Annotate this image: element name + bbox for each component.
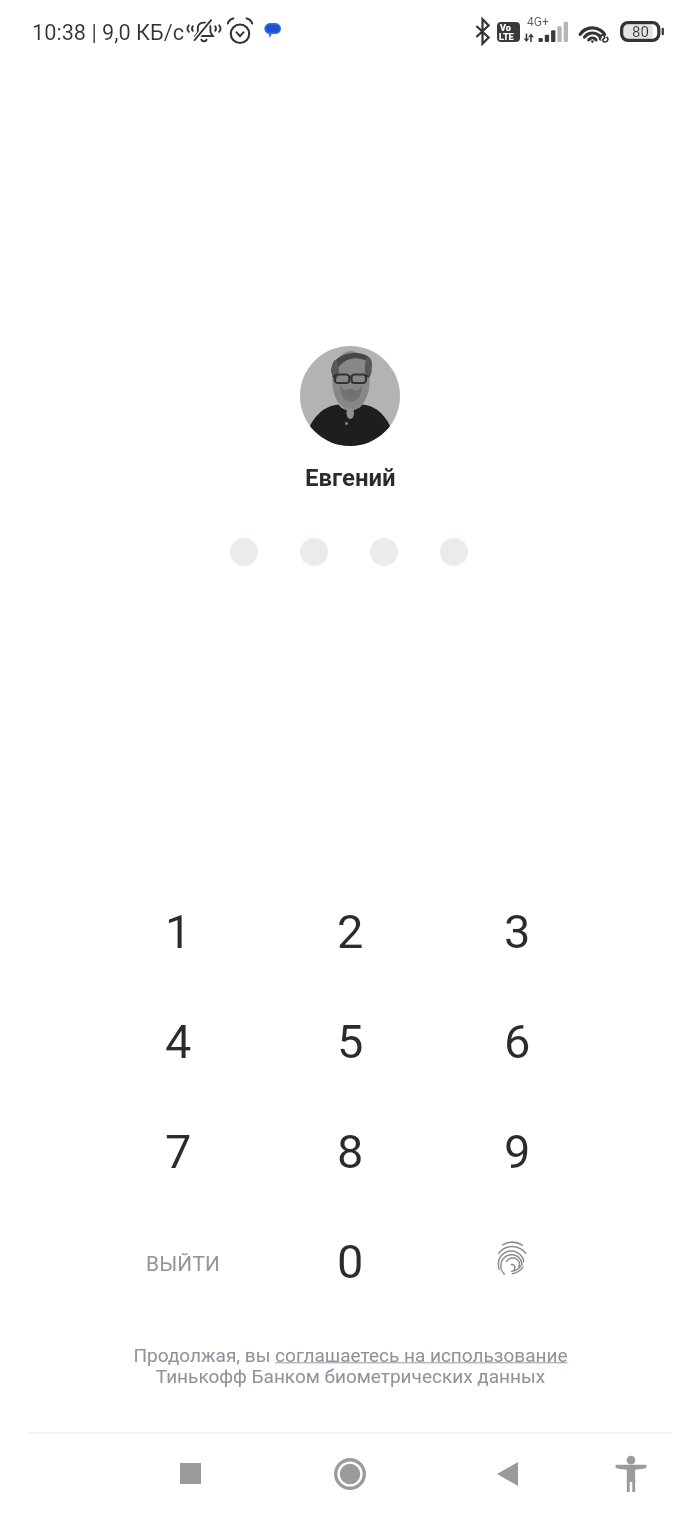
staticText: 1: [165, 904, 192, 959]
staticText: 2: [337, 904, 364, 959]
button[interactable]: Home: [305, 1430, 395, 1517]
staticText: Продолжая, вы соглашаетесь на использова…: [133, 1344, 568, 1388]
button[interactable]: 8: [295, 1105, 405, 1197]
staticText: 3: [504, 904, 531, 959]
button[interactable]: 5: [295, 995, 405, 1087]
button[interactable]: ВЫЙТИ: [128, 1218, 238, 1310]
button[interactable]: 9: [462, 1105, 572, 1197]
staticText: 80: [632, 23, 649, 41]
staticText: 7: [165, 1124, 192, 1179]
button[interactable]: 6: [462, 995, 572, 1087]
staticText: LTE: [499, 32, 514, 42]
staticText: 10:38 | 9,0 КБ/с: [32, 20, 184, 45]
button[interactable]: Fingerprint login: [462, 1215, 572, 1307]
button[interactable]: 1: [123, 885, 233, 977]
button[interactable]: Back: [462, 1430, 552, 1517]
button[interactable]: Recent apps: [145, 1430, 235, 1517]
staticText: 8: [337, 1124, 364, 1179]
button[interactable]: 7: [123, 1105, 233, 1197]
button[interactable]: 4: [123, 995, 233, 1087]
staticText: 4G+: [527, 15, 549, 29]
staticText: 6: [504, 1014, 531, 1069]
staticText: 4: [165, 1014, 192, 1069]
button[interactable]: 3: [462, 885, 572, 977]
staticText: 0: [337, 1234, 364, 1289]
staticText: Евгений: [305, 464, 396, 492]
staticText: 5: [337, 1014, 364, 1069]
button[interactable]: 2: [295, 885, 405, 977]
staticText: 9: [504, 1124, 531, 1179]
staticText: Vo: [500, 23, 511, 34]
button[interactable]: 0: [295, 1215, 405, 1307]
staticText: ВЫЙТИ: [146, 1252, 221, 1276]
button[interactable]: Accessibility: [586, 1430, 676, 1517]
